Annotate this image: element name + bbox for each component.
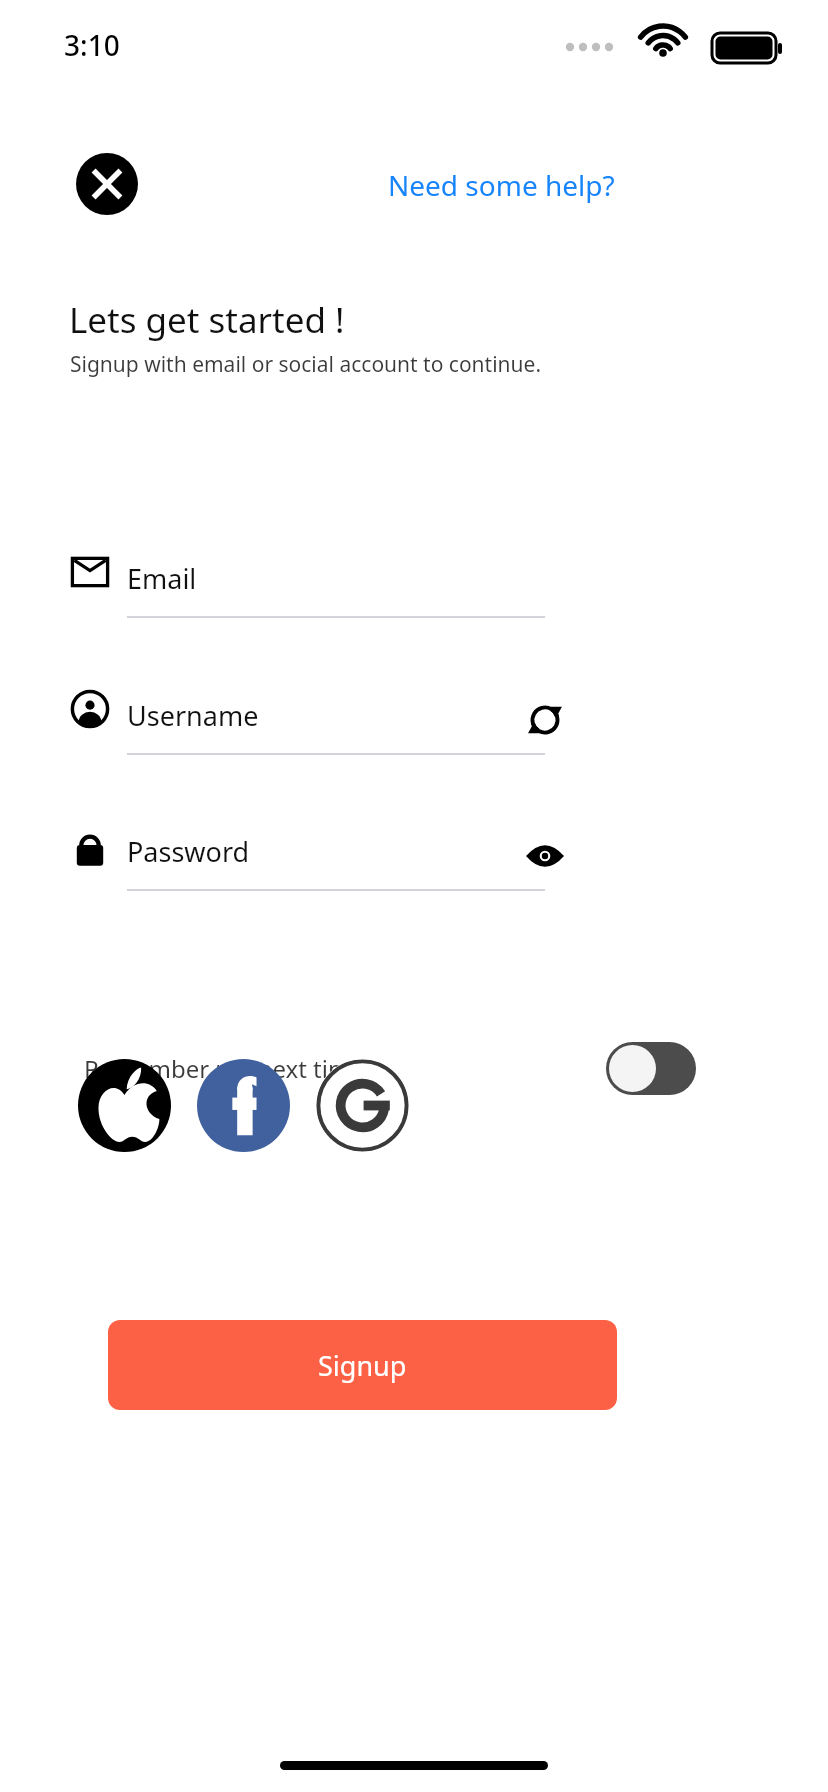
- button[interactable]: Sign up with Apple: [78, 1059, 171, 1152]
- staticText: Username: [127, 697, 259, 734]
- staticText: 3:10: [64, 26, 120, 64]
- button[interactable]: Need some help?: [388, 166, 615, 204]
- staticText: Email: [127, 560, 197, 597]
- button[interactable]: Sign up with Google: [316, 1059, 409, 1152]
- button[interactable]: Refresh username: [518, 693, 572, 747]
- staticText: Need some help?: [388, 166, 615, 204]
- button[interactable]: Signup: [108, 1320, 617, 1410]
- button[interactable]: Close: [76, 153, 138, 215]
- button[interactable]: Sign up with Facebook: [197, 1059, 290, 1152]
- staticText: Password: [127, 833, 250, 870]
- staticText: Lets get started !: [69, 296, 345, 344]
- button[interactable]: Remember me next time.: [70, 1030, 696, 1106]
- button[interactable]: Show password: [518, 829, 572, 883]
- staticText: Remember me next time.: [84, 1052, 371, 1085]
- staticText: Signup with email or social account to c…: [70, 350, 542, 379]
- staticText: Signup: [318, 1347, 407, 1384]
